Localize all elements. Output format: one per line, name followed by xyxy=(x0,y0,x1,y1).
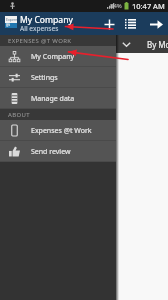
staticText: Settings xyxy=(31,73,58,83)
staticText: Expenses @t Work xyxy=(31,126,92,136)
staticText: By Month xyxy=(147,39,168,50)
staticText: 84% xyxy=(110,2,122,10)
staticText: All expenses xyxy=(20,24,59,33)
staticText: 10:47 AM xyxy=(132,1,165,11)
staticText: Manage data xyxy=(31,94,75,104)
staticText: @t work xyxy=(6,23,18,27)
button[interactable]: My Company xyxy=(0,46,116,67)
button[interactable]: Add xyxy=(100,15,118,33)
staticText: Send review xyxy=(31,147,71,157)
staticText: ABOUT xyxy=(8,111,30,119)
button[interactable]: Next xyxy=(147,15,165,33)
staticText: My Company xyxy=(31,52,75,62)
button[interactable]: Settings xyxy=(0,67,116,88)
staticText: Expense xyxy=(6,17,18,22)
button[interactable]: List view xyxy=(121,15,139,33)
button[interactable]: Expand xyxy=(117,35,135,53)
staticText: EXPENSES @T WORK xyxy=(8,37,72,45)
button[interactable]: Expenses @t Work xyxy=(0,120,116,141)
button[interactable]: Manage data xyxy=(0,88,116,109)
staticText: My Company xyxy=(20,14,73,26)
button[interactable]: Send review xyxy=(0,141,116,162)
